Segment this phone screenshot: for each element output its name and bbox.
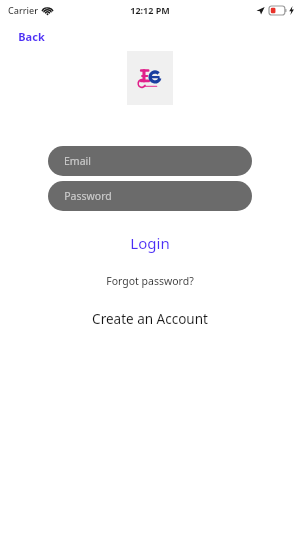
button[interactable]: Back <box>16 26 47 47</box>
staticText: Password <box>64 189 112 203</box>
staticText: Email <box>64 154 91 168</box>
button[interactable]: Email <box>48 146 252 176</box>
button[interactable]: Login <box>120 229 180 257</box>
staticText: Login <box>130 233 170 253</box>
button[interactable]: Forgot password? <box>96 270 204 292</box>
staticText: Carrier <box>8 4 38 16</box>
staticText: Back <box>18 29 45 44</box>
button[interactable]: Password <box>48 181 252 211</box>
staticText: Create an Account <box>92 310 208 328</box>
staticText: Forgot password? <box>106 274 194 288</box>
staticText: 12:12 PM <box>130 4 170 16</box>
button[interactable]: Create an Account <box>82 306 218 332</box>
